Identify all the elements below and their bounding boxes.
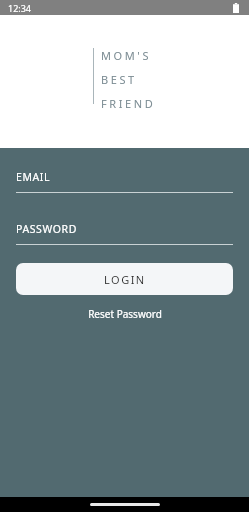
staticText: MOM'S xyxy=(101,48,152,63)
staticText: 12:34 xyxy=(8,2,32,14)
staticText: PASSWORD xyxy=(16,222,77,236)
button[interactable]: PASSWORD xyxy=(16,218,233,240)
staticText: BEST xyxy=(101,72,137,87)
other: Battery xyxy=(233,3,239,13)
staticText: FRIEND xyxy=(101,96,156,111)
staticText: Reset Password xyxy=(88,307,162,321)
button[interactable]: Reset Password xyxy=(16,306,233,322)
staticText: EMAIL xyxy=(16,170,51,184)
button[interactable]: LOGIN xyxy=(16,263,233,295)
staticText: LOGIN xyxy=(104,272,146,287)
button[interactable]: EMAIL xyxy=(16,166,233,188)
